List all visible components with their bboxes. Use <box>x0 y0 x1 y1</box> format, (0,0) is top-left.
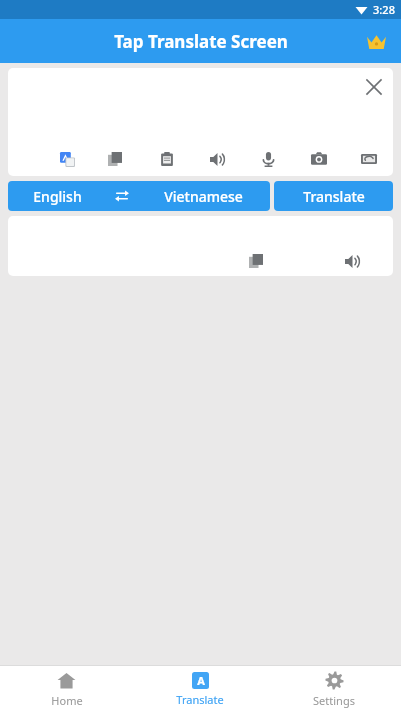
staticText: Tap Translate Screen <box>114 30 288 53</box>
button[interactable]: Translate <box>54 146 80 172</box>
staticText: Vietnamese <box>164 187 243 206</box>
button[interactable]: Paste <box>154 146 180 172</box>
staticText: Translate <box>176 692 224 707</box>
button[interactable]: Microphone <box>255 146 281 172</box>
button[interactable]: Home <box>0 666 133 712</box>
button[interactable]: Camera <box>306 146 332 172</box>
staticText: A <box>197 673 205 688</box>
button[interactable]: Speak <box>204 146 230 172</box>
button[interactable]: English <box>8 181 107 211</box>
button[interactable]: Swap languages <box>107 181 137 211</box>
button[interactable]: Copy translation <box>243 248 269 274</box>
staticText: Home <box>51 693 83 708</box>
button[interactable]: Settings <box>267 666 401 712</box>
button[interactable]: Copy <box>102 146 128 172</box>
button[interactable]: Translate <box>274 181 393 211</box>
button[interactable]: Image translate <box>356 146 382 172</box>
button[interactable]: A <box>133 666 267 712</box>
staticText: Settings <box>313 693 355 708</box>
button[interactable]: Vietnamese <box>137 181 270 211</box>
staticText: 3:28 <box>373 2 395 17</box>
button[interactable]: Speak translation <box>339 248 365 274</box>
staticText: English <box>33 187 82 206</box>
button[interactable]: Premium <box>359 24 393 58</box>
staticText: Translate <box>303 187 365 206</box>
button[interactable]: Close <box>358 71 390 103</box>
